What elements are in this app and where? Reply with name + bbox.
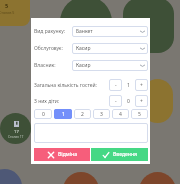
button[interactable]: Increase: [135, 95, 148, 107]
button[interactable]: Increase: [135, 79, 148, 91]
button[interactable]: 0: [34, 109, 52, 119]
button[interactable]: 2: [74, 109, 91, 119]
staticText: Введення: [113, 151, 137, 158]
button[interactable]: 5: [131, 109, 148, 119]
staticText: Відміна: [58, 151, 77, 158]
staticText: Обслуговує:: [34, 45, 63, 52]
staticText: +: [140, 82, 143, 89]
staticText: Касир: [76, 45, 91, 52]
button[interactable]: 1: [54, 109, 72, 119]
button[interactable]: Касир: [72, 60, 148, 71]
staticText: Вид рахунку:: [34, 28, 66, 35]
button[interactable]: Decrease: [109, 79, 122, 91]
staticText: 1: [62, 111, 65, 118]
staticText: 2: [81, 111, 84, 118]
button[interactable]: Касир: [72, 43, 148, 54]
staticText: 5: [138, 111, 141, 118]
staticText: Власник:: [34, 62, 56, 69]
staticText: Касир: [76, 62, 91, 69]
button[interactable]: Відміна: [34, 148, 90, 161]
staticText: 4: [119, 111, 122, 118]
staticText: -: [115, 82, 117, 89]
staticText: 17: [14, 129, 19, 135]
staticText: Столик 5: [0, 10, 15, 15]
staticText: 1: [127, 82, 130, 89]
button[interactable]: 3: [93, 109, 110, 119]
staticText: 3: [100, 111, 103, 118]
staticText: 0: [42, 111, 45, 118]
button[interactable]: Банкет: [72, 26, 148, 37]
button[interactable]: Decrease: [109, 95, 122, 107]
button[interactable]: Введення: [91, 148, 148, 161]
staticText: З них діти:: [34, 98, 60, 105]
staticText: 5: [5, 2, 9, 9]
staticText: Загальна кількість гостей:: [34, 82, 97, 89]
staticText: 0: [127, 98, 130, 105]
staticText: +: [140, 98, 143, 105]
staticText: Столик 17: [8, 135, 24, 139]
button[interactable]: 4: [112, 109, 129, 119]
staticText: -: [115, 98, 117, 105]
staticText: Банкет: [76, 28, 93, 35]
